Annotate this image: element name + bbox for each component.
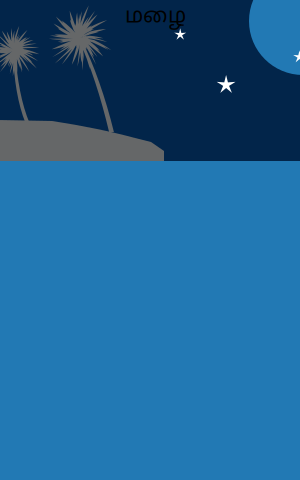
staticText: மழை (125, 4, 186, 30)
